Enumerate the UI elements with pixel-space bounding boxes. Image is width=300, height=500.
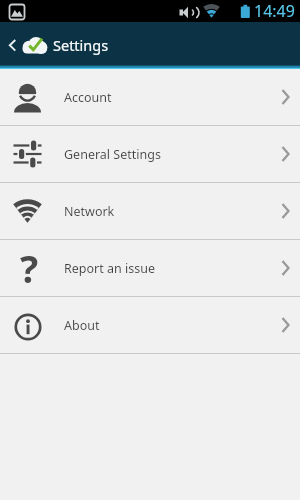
staticText: 14:49 [254,0,295,22]
button[interactable]: General Settings [0,126,300,182]
staticText: About [64,317,100,334]
staticText: Network [64,203,115,220]
staticText: ? [20,242,39,294]
button[interactable]: ? [0,240,300,296]
button[interactable] [0,22,110,66]
staticText: General Settings [64,146,161,163]
button[interactable]: Network [0,183,300,239]
button[interactable]: About [0,297,300,353]
staticText: Account [64,89,112,106]
staticText: Settings [53,35,109,55]
staticText: Report an issue [64,260,155,277]
button[interactable]: Account [0,69,300,125]
